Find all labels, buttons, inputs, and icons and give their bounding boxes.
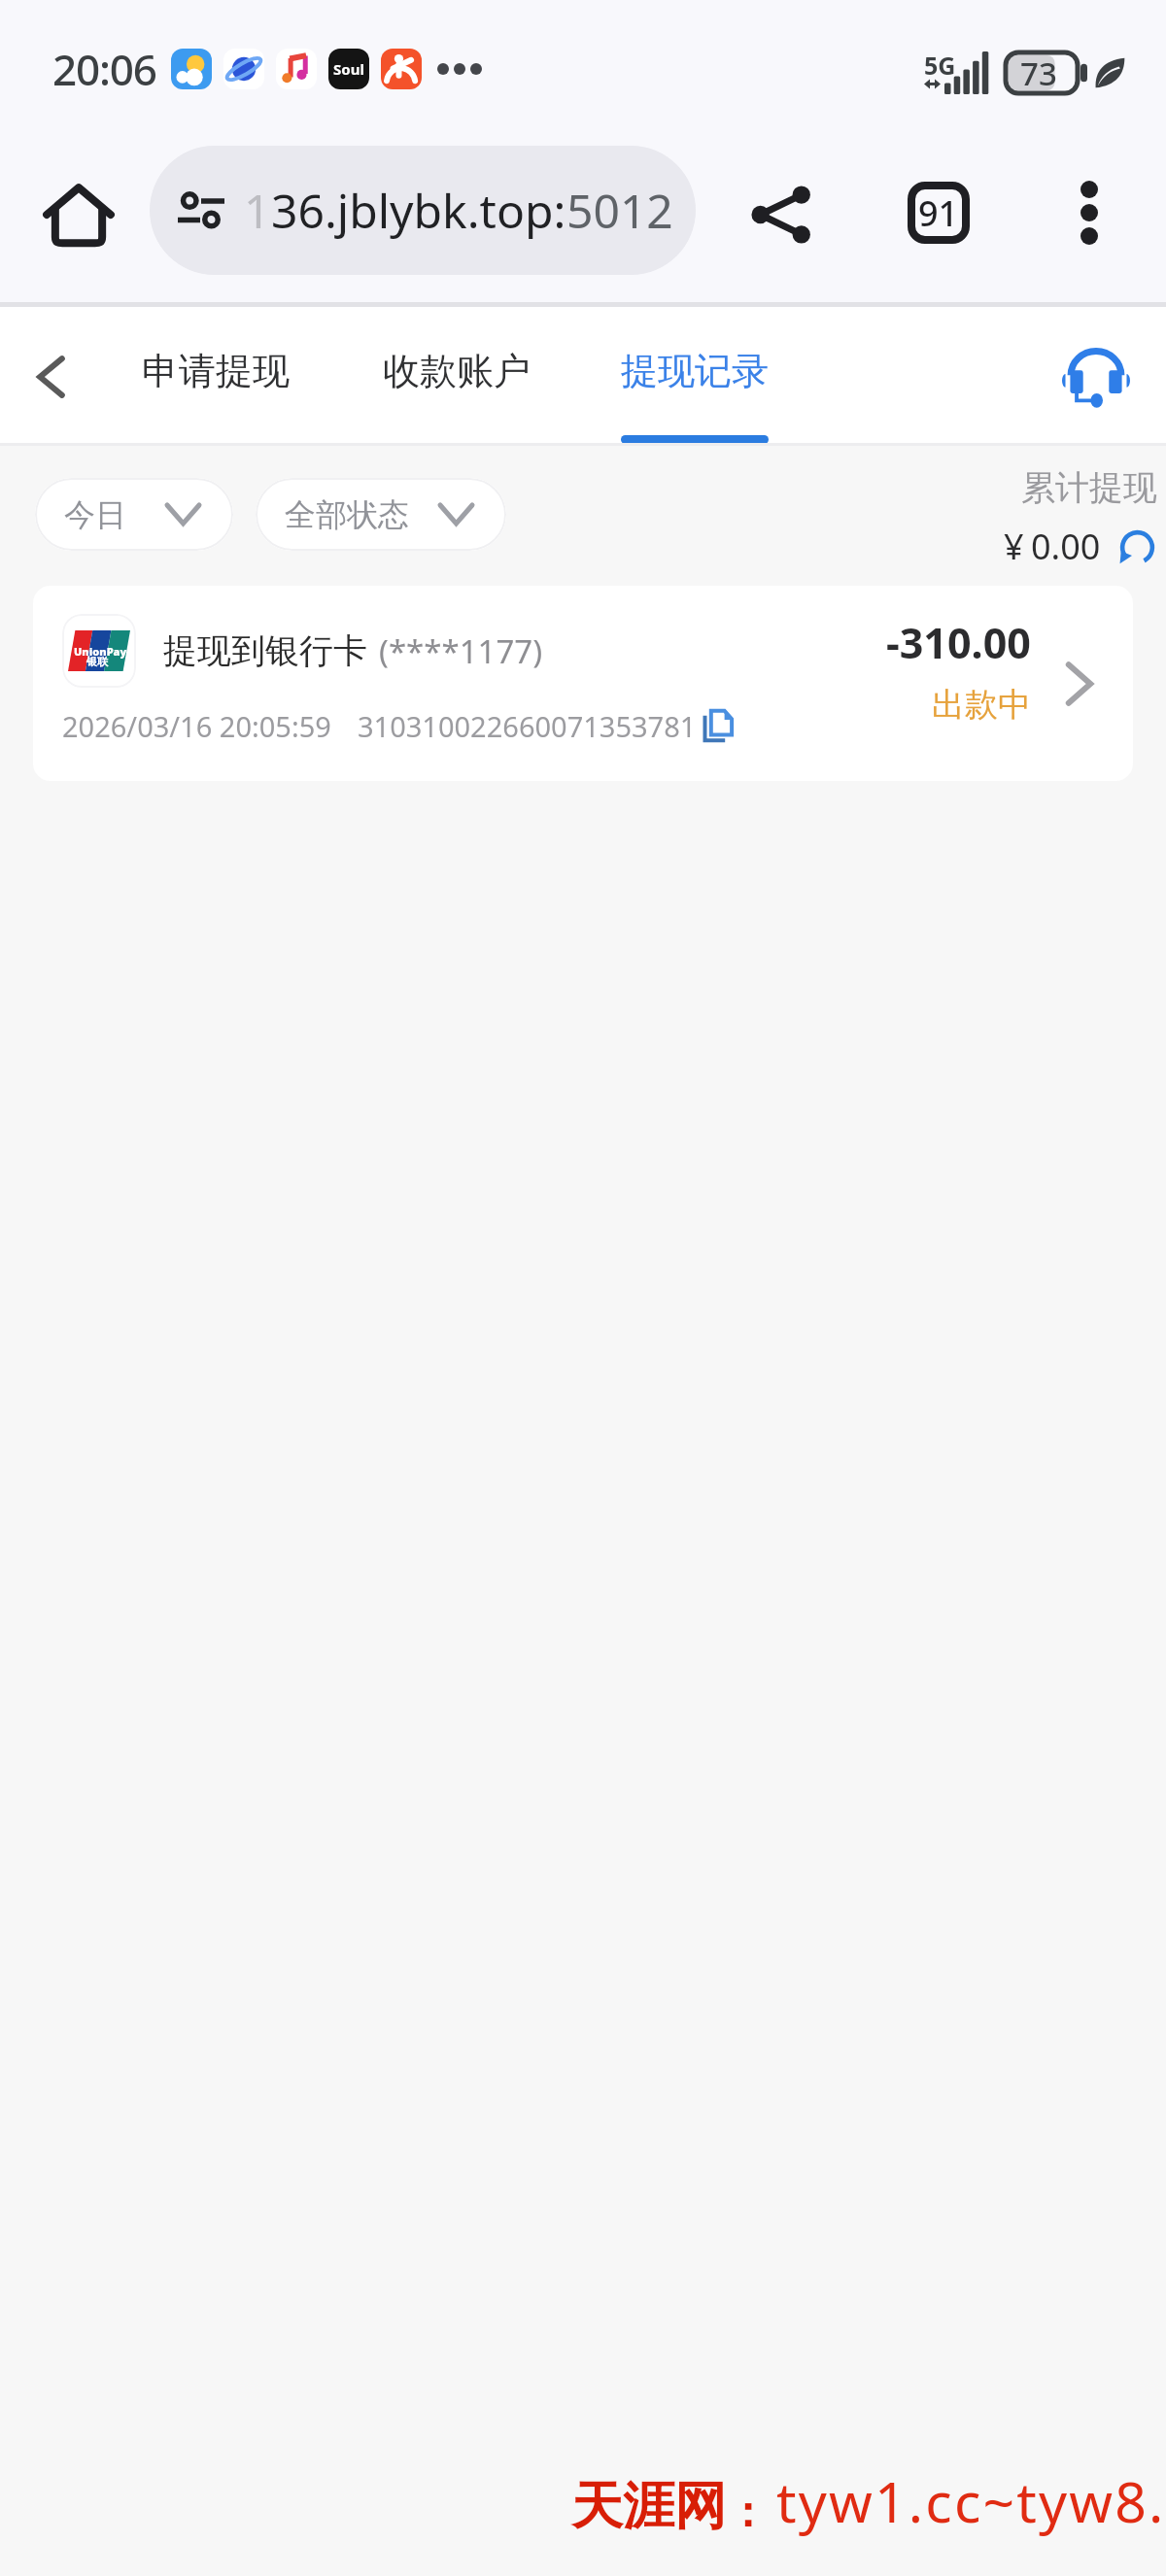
staticText: 1: [244, 179, 271, 242]
staticText: 天涯网: [571, 2474, 726, 2539]
staticText: 出款中: [932, 684, 1031, 726]
button[interactable]: Tabs: [897, 171, 980, 254]
staticText: -310.00: [886, 614, 1031, 671]
button[interactable]: 申请提现: [119, 307, 313, 443]
staticText: 5G: [924, 49, 956, 82]
button[interactable]: 全部状态: [256, 478, 506, 551]
staticText: 累计提现: [1021, 466, 1157, 509]
staticText: 今日: [64, 495, 126, 534]
staticText: 全部状态: [285, 495, 409, 534]
button[interactable]: 收款账户: [360, 307, 554, 443]
staticText: 20:06: [52, 40, 156, 98]
staticText: 91: [918, 189, 959, 237]
button[interactable]: 提现记录: [598, 307, 792, 443]
staticText: 310310022660071353781: [358, 707, 697, 745]
button[interactable]: Customer service: [1057, 340, 1135, 418]
button[interactable]: Back: [9, 335, 92, 419]
button[interactable]: Home: [37, 173, 120, 256]
staticText: tyw1.cc~tyw8.cc: [776, 2463, 1166, 2539]
staticText: Soul: [333, 59, 364, 79]
button[interactable]: UnionPay: [33, 586, 1133, 781]
staticText: 收款账户: [383, 348, 531, 394]
staticText: ¥: [1004, 523, 1024, 570]
staticText: 73: [1020, 51, 1057, 92]
staticText: 36.jblybk.top:: [271, 179, 566, 242]
staticText: 0.00: [1031, 523, 1101, 570]
button[interactable]: Copy order number: [699, 706, 737, 745]
staticText: (****1177): [379, 629, 543, 673]
staticText: ：: [726, 2486, 769, 2539]
button[interactable]: Refresh: [1116, 526, 1157, 567]
button[interactable]: 1: [150, 146, 696, 275]
staticText: 银联: [86, 655, 108, 668]
staticText: 申请提现: [142, 348, 290, 394]
staticText: 5012: [566, 179, 673, 242]
staticText: 提现记录: [621, 348, 769, 394]
staticText: 提现到银行卡: [163, 629, 367, 672]
button[interactable]: More options: [1047, 171, 1131, 254]
staticText: UnionPay: [74, 644, 127, 659]
button[interactable]: Share: [738, 173, 822, 256]
button[interactable]: 今日: [35, 478, 233, 551]
staticText: 2026/03/16 20:05:59: [62, 707, 331, 745]
